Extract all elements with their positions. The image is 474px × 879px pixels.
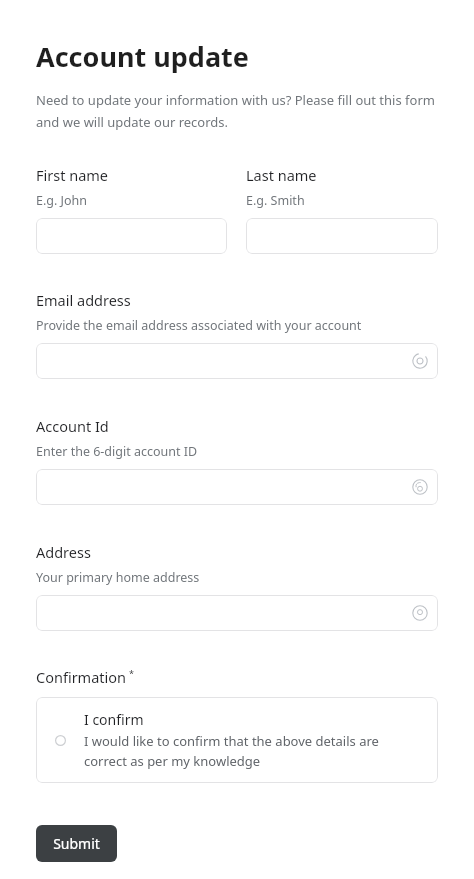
staticText: Submit <box>53 834 100 853</box>
staticText: Address <box>36 542 91 562</box>
staticText: I confirm <box>84 710 144 729</box>
button[interactable]: Location <box>36 595 438 631</box>
button[interactable]: Account ID <box>36 469 438 505</box>
other: Location <box>412 605 428 621</box>
staticText: E.g. Smith <box>246 192 305 209</box>
staticText: I would like to confirm that the above d… <box>84 732 422 770</box>
button[interactable] <box>246 218 438 254</box>
button[interactable]: I confirm <box>36 697 438 783</box>
button[interactable] <box>36 218 227 254</box>
staticText: First name <box>36 165 109 185</box>
staticText: Email address <box>36 290 131 310</box>
other: Email <box>412 353 428 369</box>
staticText: E.g. John <box>36 192 88 209</box>
staticText: * <box>129 667 134 679</box>
staticText: Need to update your information with us?… <box>36 91 438 131</box>
staticText: Your primary home address <box>36 569 200 586</box>
staticText: Provide the email address associated wit… <box>36 317 362 334</box>
button[interactable]: Submit <box>36 825 117 862</box>
staticText: Account update <box>36 38 249 75</box>
staticText: Account Id <box>36 416 109 436</box>
staticText: Last name <box>246 165 317 185</box>
other: Account ID <box>412 479 428 495</box>
button[interactable]: Email <box>36 343 438 379</box>
staticText: Enter the 6-digit account ID <box>36 443 198 460</box>
staticText: Confirmation <box>36 667 127 687</box>
